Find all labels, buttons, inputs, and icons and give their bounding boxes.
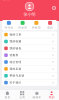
- button[interactable]: 退款: [43, 21, 57, 29]
- staticText: 我的订单: [10, 33, 22, 36]
- staticText: 我的收藏: [10, 40, 22, 43]
- staticText: 我的钱包: [10, 47, 22, 50]
- button[interactable]: 分类: [15, 90, 30, 100]
- staticText: 优惠券: [10, 53, 19, 57]
- button[interactable]: 帮助与反馈: [2, 72, 57, 79]
- button[interactable]: 我的收藏: [2, 38, 57, 45]
- staticText: 地址管理: [10, 60, 22, 64]
- staticText: 首页: [4, 96, 10, 99]
- button[interactable]: Settings: [51, 5, 57, 11]
- button[interactable]: 我的订单: [2, 31, 57, 38]
- button[interactable]: 我的足迹: [2, 66, 57, 72]
- staticText: 分类: [19, 96, 25, 99]
- staticText: 关于我们: [10, 81, 22, 84]
- button[interactable]: 待发货: [16, 21, 30, 29]
- button[interactable]: 地址管理: [2, 59, 57, 66]
- button[interactable]: 关于我们: [2, 79, 57, 86]
- button[interactable]: 优惠券: [2, 52, 57, 59]
- staticText: 退款: [47, 26, 53, 29]
- staticText: 待发货: [18, 26, 27, 29]
- button[interactable]: 我的: [44, 90, 59, 100]
- staticText: 我的足迹: [10, 67, 22, 70]
- button[interactable]: 我的钱包: [2, 45, 57, 52]
- button[interactable]: 待收货: [29, 21, 43, 29]
- staticText: 待收货: [32, 26, 41, 29]
- staticText: 张小明: [23, 12, 35, 17]
- button[interactable]: 待付款: [2, 21, 16, 29]
- button[interactable]: 首页: [0, 90, 15, 100]
- staticText: 9:41: [2, 0, 9, 1]
- button[interactable]: 购物车: [29, 90, 44, 100]
- staticText: 帮助与反馈: [10, 74, 25, 77]
- staticText: 购物车: [32, 96, 41, 99]
- staticText: 我的: [49, 96, 55, 99]
- staticText: 待付款: [4, 26, 13, 29]
